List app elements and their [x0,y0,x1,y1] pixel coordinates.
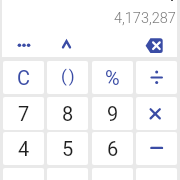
staticText: % [105,66,120,89]
button[interactable]: 8 [47,97,88,130]
staticText: 7 [18,102,30,125]
button[interactable]: C [3,61,44,94]
staticText: 6 [107,137,119,160]
button[interactable] [54,33,80,57]
staticText: 4 [18,137,30,160]
staticText: C [17,66,31,89]
staticText: 4,173,287 [114,10,176,27]
button[interactable] [140,33,170,59]
button[interactable] [136,97,177,130]
button[interactable]: 4 [3,132,44,165]
staticText: () [61,66,77,86]
button[interactable] [136,61,177,94]
button[interactable] [10,34,38,56]
staticText: 5 [62,137,74,160]
staticText: 8 [62,102,74,125]
button[interactable]: 6 [92,132,133,165]
button[interactable]: 5 [47,132,88,165]
button[interactable]: 9 [92,97,133,130]
staticText: 9 [107,102,119,125]
button[interactable] [136,132,177,165]
button[interactable]: 7 [3,97,44,130]
button[interactable]: % [92,61,133,94]
button[interactable]: () [47,61,88,94]
